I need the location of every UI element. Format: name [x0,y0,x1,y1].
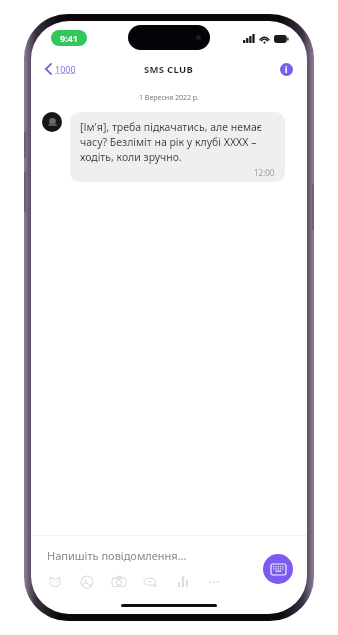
staticText: 9:41 [60,32,78,44]
button[interactable]: Voice message [175,574,191,590]
button[interactable]: GIF [143,574,159,590]
button[interactable]: Photos [79,574,95,590]
staticText: 1000 [55,63,76,75]
button[interactable]: 1000 [41,60,80,78]
button[interactable]: Напишіть повідомлення… [47,547,187,564]
staticText: 1 Вересня 2022 р. [31,93,307,103]
staticText: i [285,64,288,75]
staticText: 12:00 [254,167,275,178]
staticText: [Ім'я], треба підкачатись, але немає час… [80,120,275,164]
button[interactable]: Sender avatar [42,112,62,132]
staticText: SMS CLUB [144,63,194,76]
button[interactable]: Camera [111,574,127,590]
button[interactable]: Keyboard [263,554,293,584]
button[interactable]: [Ім'я], треба підкачатись, але немає час… [70,112,285,182]
button[interactable]: More [206,574,222,590]
button[interactable]: Stickers [47,574,63,590]
button[interactable]: Info [280,63,293,76]
